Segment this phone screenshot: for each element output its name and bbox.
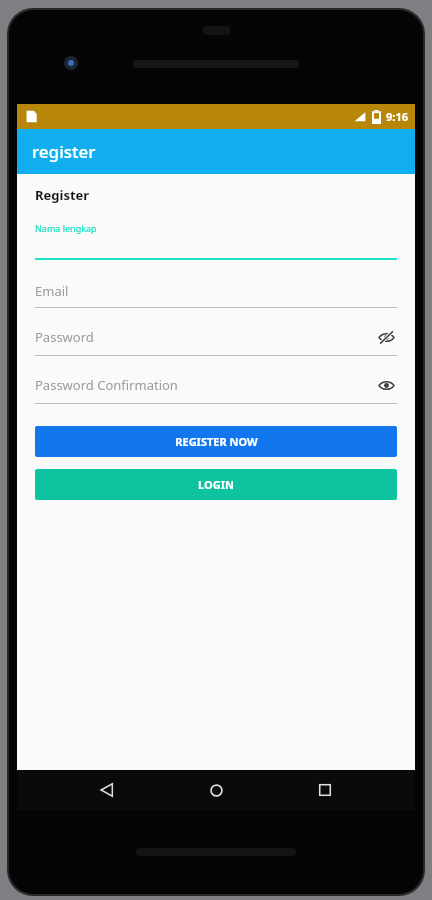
- staticText: register: [32, 140, 96, 163]
- staticText: Email: [35, 282, 397, 300]
- staticText: Register: [35, 186, 90, 204]
- button[interactable]: Home: [197, 771, 235, 809]
- staticText: Nama lengkap: [35, 222, 97, 234]
- button[interactable]: Back: [88, 771, 126, 809]
- staticText: Password: [35, 328, 375, 346]
- staticText: LOGIN: [198, 477, 234, 492]
- button[interactable]: Email: [35, 282, 397, 308]
- staticText: REGISTER NOW: [175, 434, 258, 449]
- button[interactable]: Show password: [375, 374, 397, 396]
- button[interactable]: Password Confirmation: [35, 374, 397, 404]
- staticText: 9:16: [386, 109, 408, 124]
- button[interactable]: Password: [35, 326, 397, 356]
- button[interactable]: Nama lengkap: [35, 222, 397, 260]
- button[interactable]: Recent apps: [306, 771, 344, 809]
- button[interactable]: LOGIN: [35, 469, 397, 500]
- staticText: Password Confirmation: [35, 376, 375, 394]
- button[interactable]: Hide password: [375, 326, 397, 348]
- button[interactable]: REGISTER NOW: [35, 426, 397, 457]
